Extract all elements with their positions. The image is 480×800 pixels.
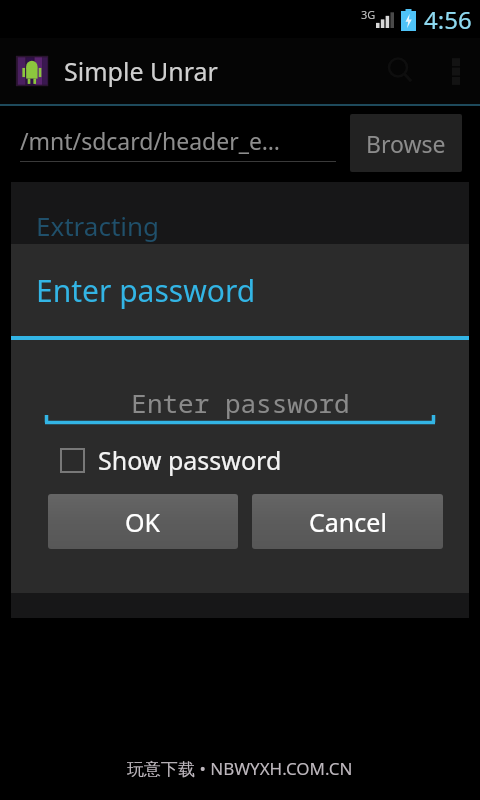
button[interactable]: Enter password bbox=[45, 378, 435, 426]
button[interactable]: Show password bbox=[61, 438, 282, 482]
button[interactable]: Cancel bbox=[252, 494, 443, 549]
button[interactable]: OK bbox=[48, 494, 238, 549]
button[interactable]: /mnt/sdcard/header_e… bbox=[20, 125, 336, 162]
staticText: Enter password bbox=[36, 270, 256, 311]
staticText: Enter password bbox=[131, 385, 350, 420]
staticText: Cancel bbox=[309, 505, 387, 539]
staticText: Extracting bbox=[36, 208, 160, 243]
staticText: Simple Unrar bbox=[64, 54, 218, 88]
staticText: 4:56 bbox=[424, 3, 472, 36]
staticText: 玩意下载 • NBWYXH.COM.CN bbox=[127, 757, 353, 780]
staticText: OK bbox=[125, 505, 161, 539]
staticText: 3G bbox=[361, 7, 376, 22]
staticText: Browse bbox=[366, 128, 446, 159]
staticText: /mnt/sdcard/header_e… bbox=[20, 125, 281, 156]
staticText: Show password bbox=[98, 443, 282, 477]
button[interactable]: Browse bbox=[350, 114, 462, 172]
button[interactable]: More options bbox=[432, 38, 480, 104]
